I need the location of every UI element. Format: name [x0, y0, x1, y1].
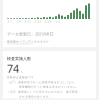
staticText: 検査実施人数: [7, 56, 31, 61]
staticText: 4/1 4/8 4/15 4/22 4/29 5/6: [7, 20, 60, 24]
staticText: 人: [20, 70, 23, 73]
staticText: 医療機関が行った検査は含まれていません。: [7, 85, 79, 89]
staticText: 各数値は速報値です: [7, 76, 34, 79]
button[interactable]: 東京都オープンデータカタログ: [3, 40, 49, 44]
staticText: される場合があります。: [7, 95, 52, 98]
staticText: 74: [7, 61, 19, 76]
staticText: 東京都オープンデータカタログ: [7, 40, 49, 43]
staticText: （注2）速報値として公表するものであり、後日変更: [7, 90, 78, 93]
staticText: データ更新日：2021/5/8: [7, 31, 49, 36]
staticText: （注1）保健所等で行った検査件数を計上しており、: [7, 80, 78, 84]
